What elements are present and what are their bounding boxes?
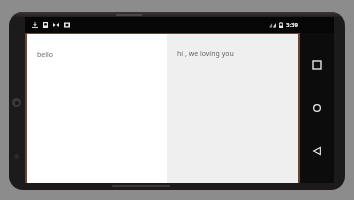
button[interactable]: Recent apps <box>306 54 328 76</box>
button[interactable]: hi , we loving you <box>167 34 298 183</box>
button[interactable]: Home <box>306 97 328 119</box>
button[interactable]: Back <box>306 140 328 162</box>
staticText: bello <box>37 50 54 60</box>
button[interactable]: bello <box>27 34 167 183</box>
staticText: 3:39 <box>286 21 298 29</box>
staticText: hi , we loving you <box>177 49 234 59</box>
